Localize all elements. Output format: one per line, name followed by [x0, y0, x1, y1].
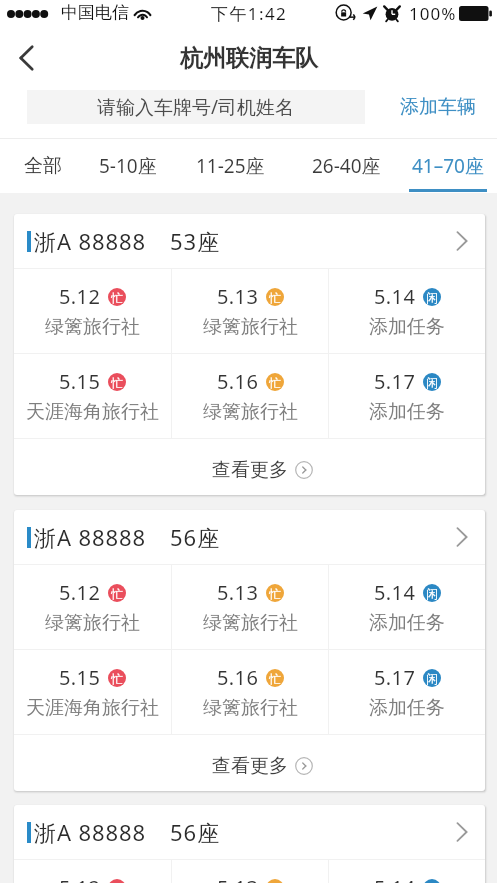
staticText: 闲	[426, 290, 438, 305]
staticText: 26-40座	[312, 153, 381, 179]
staticText: 5.17	[374, 368, 416, 395]
staticText: 浙A 88888	[34, 522, 146, 552]
button[interactable]: 5.16	[172, 354, 328, 438]
button[interactable]: 请输入车牌号/司机姓名	[27, 90, 365, 124]
other: Open vehicle detail	[456, 526, 468, 548]
button[interactable]: 查看更多	[14, 439, 485, 495]
button[interactable]: 5.15	[14, 650, 171, 734]
staticText: 绿篱旅行社	[203, 696, 298, 720]
staticText: 100%	[409, 2, 457, 25]
staticText: 5.13	[217, 874, 259, 883]
button[interactable]: 5.13	[172, 565, 328, 649]
button[interactable]: 5.13	[172, 860, 328, 883]
staticText: 浙A 88888	[34, 817, 146, 847]
button[interactable]: 5.12	[14, 269, 171, 353]
staticText: 忙	[111, 671, 123, 686]
button[interactable]: 浙A 88888	[14, 805, 485, 859]
button[interactable]: 5-10座	[88, 139, 168, 193]
staticText: 闲	[426, 586, 438, 601]
staticText: 忙	[269, 881, 281, 883]
staticText: 忙	[111, 586, 123, 601]
staticText: 添加车辆	[400, 95, 476, 119]
staticText: 5.16	[217, 368, 259, 395]
button[interactable]: 5.16	[172, 650, 328, 734]
staticText: 5.15	[59, 664, 101, 691]
staticText: 5.13	[217, 579, 259, 606]
staticText: 请输入车牌号/司机姓名	[97, 94, 295, 120]
staticText: 添加任务	[369, 611, 445, 635]
staticText: 全部	[24, 154, 62, 178]
staticText: 忙	[269, 375, 281, 390]
staticText: 绿篱旅行社	[203, 400, 298, 424]
staticText: 5.14	[374, 579, 416, 606]
staticText: 忙	[111, 290, 123, 305]
staticText: 忙	[269, 290, 281, 305]
button[interactable]: 5.12	[14, 565, 171, 649]
staticText: 绿篱旅行社	[45, 315, 140, 339]
staticText: 5.17	[374, 664, 416, 691]
staticText: 闲	[426, 671, 438, 686]
button[interactable]: 全部	[14, 139, 72, 193]
staticText: 添加任务	[369, 400, 445, 424]
staticText: 闲	[426, 881, 438, 883]
staticText: 5-10座	[99, 153, 157, 179]
staticText: 添加任务	[369, 315, 445, 339]
button[interactable]: 5.17	[329, 354, 485, 438]
button[interactable]: 5.14	[329, 269, 485, 353]
staticText: 56座	[170, 522, 220, 552]
button[interactable]: 查看更多	[14, 735, 485, 791]
button[interactable]: Back	[0, 33, 52, 83]
staticText: 查看更多	[212, 458, 288, 482]
button[interactable]: 5.12	[14, 860, 171, 883]
staticText: 杭州联润车队	[180, 44, 318, 73]
staticText: 5.15	[59, 368, 101, 395]
staticText: 查看更多	[212, 754, 288, 778]
staticText: 忙	[111, 881, 123, 883]
staticText: 中国电信	[61, 2, 129, 23]
staticText: 5.14	[374, 874, 416, 883]
button[interactable]: 26-40座	[302, 139, 390, 193]
staticText: 闲	[426, 375, 438, 390]
staticText: 56座	[170, 817, 220, 847]
staticText: 5.16	[217, 664, 259, 691]
other: Open vehicle detail	[456, 230, 468, 252]
other: Open vehicle detail	[456, 821, 468, 843]
staticText: 下午1:42	[211, 2, 288, 25]
staticText: 忙	[269, 671, 281, 686]
staticText: 添加任务	[369, 696, 445, 720]
staticText: 5.12	[59, 283, 101, 310]
button[interactable]: 添加车辆	[391, 90, 485, 124]
staticText: 5.12	[59, 874, 101, 883]
staticText: 忙	[269, 586, 281, 601]
staticText: 绿篱旅行社	[203, 611, 298, 635]
button[interactable]: 41–70座	[404, 139, 492, 193]
button[interactable]: 5.15	[14, 354, 171, 438]
staticText: 41–70座	[412, 153, 484, 179]
button[interactable]: 5.14	[329, 565, 485, 649]
button[interactable]: 浙A 88888	[14, 510, 485, 564]
staticText: 绿篱旅行社	[45, 611, 140, 635]
staticText: 浙A 88888	[34, 226, 146, 256]
staticText: 5.12	[59, 579, 101, 606]
button[interactable]: 11-25座	[187, 139, 274, 193]
staticText: 天涯海角旅行社	[26, 696, 159, 720]
button[interactable]: 5.17	[329, 650, 485, 734]
staticText: 11-25座	[196, 153, 265, 179]
staticText: 天涯海角旅行社	[26, 400, 159, 424]
button[interactable]: 5.14	[329, 860, 485, 883]
button[interactable]: 5.13	[172, 269, 328, 353]
staticText: 绿篱旅行社	[203, 315, 298, 339]
staticText: 53座	[170, 226, 220, 256]
button[interactable]: 浙A 88888	[14, 214, 485, 268]
staticText: 5.13	[217, 283, 259, 310]
staticText: 忙	[111, 375, 123, 390]
staticText: 5.14	[374, 283, 416, 310]
